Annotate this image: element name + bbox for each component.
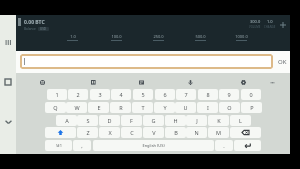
- button[interactable]: Y: [154, 102, 175, 113]
- button[interactable]: English (US): [93, 140, 214, 151]
- staticText: 1000.0: [235, 34, 248, 39]
- button[interactable]: T: [132, 102, 153, 113]
- staticText: E: [97, 104, 101, 111]
- staticText: M: [216, 129, 221, 136]
- staticText: 6: [163, 91, 167, 98]
- button[interactable]: K: [208, 115, 229, 126]
- button[interactable]: M: [208, 127, 229, 138]
- staticText: 1.0: [70, 34, 76, 39]
- button[interactable]: I: [197, 102, 218, 113]
- staticText: 1.0: [267, 19, 273, 24]
- staticText: K: [217, 117, 221, 124]
- staticText: H: [173, 117, 178, 124]
- button[interactable]: GIF: [136, 77, 146, 87]
- button[interactable]: P: [241, 102, 262, 113]
- staticText: .: [223, 142, 225, 149]
- button[interactable]: S: [77, 115, 98, 126]
- button[interactable]: L: [230, 115, 251, 126]
- button[interactable]: 1.0: [63, 34, 81, 45]
- staticText: 4: [119, 91, 123, 98]
- button[interactable]: Stickers: [88, 77, 98, 87]
- staticText: Balance: [24, 27, 36, 31]
- button[interactable]: Z: [77, 127, 98, 138]
- staticText: W: [74, 104, 80, 111]
- staticText: 7: [184, 91, 188, 98]
- button[interactable]: Q: [45, 102, 66, 113]
- button[interactable]: 0: [241, 89, 261, 100]
- button[interactable]: U: [175, 102, 196, 113]
- button[interactable]: W: [66, 102, 87, 113]
- button[interactable]: 2: [68, 89, 88, 100]
- staticText: P: [250, 104, 254, 111]
- button[interactable]: More options: [267, 77, 277, 87]
- button[interactable]: J: [186, 115, 207, 126]
- button[interactable]: Recent apps: [0, 35, 16, 49]
- button[interactable]: Enter: [234, 140, 261, 151]
- button[interactable]: 4: [111, 89, 131, 100]
- staticText: USD: [40, 27, 47, 31]
- button[interactable]: V: [143, 127, 164, 138]
- staticText: V: [152, 129, 156, 136]
- staticText: I: [207, 104, 209, 111]
- staticText: VOLUME: [249, 25, 261, 29]
- staticText: O: [227, 104, 232, 111]
- button[interactable]: E: [88, 102, 109, 113]
- button[interactable]: F: [121, 115, 142, 126]
- button[interactable]: Voice input: [185, 77, 195, 87]
- button[interactable]: 100.0: [107, 34, 125, 45]
- staticText: Z: [86, 129, 90, 136]
- button[interactable]: OK: [274, 54, 290, 69]
- button[interactable]: C: [121, 127, 142, 138]
- button[interactable]: G: [143, 115, 164, 126]
- button[interactable]: 6: [155, 89, 175, 100]
- button[interactable]: !#1: [45, 140, 72, 151]
- button[interactable]: Shift: [45, 127, 76, 138]
- button[interactable]: ,: [73, 140, 91, 151]
- button[interactable]: 8: [198, 89, 218, 100]
- staticText: B: [174, 129, 178, 136]
- button[interactable]: N: [186, 127, 207, 138]
- button[interactable]: 1: [47, 89, 67, 100]
- button[interactable]: Home: [0, 75, 16, 89]
- staticText: 0.00 BTC: [24, 19, 45, 26]
- staticText: R: [119, 104, 123, 111]
- staticText: 8: [206, 91, 210, 98]
- staticText: X: [108, 129, 112, 136]
- button[interactable]: Emoji: [37, 77, 47, 87]
- staticText: 500.0: [195, 34, 206, 39]
- button[interactable]: Backspace: [230, 127, 261, 138]
- button[interactable]: R: [110, 102, 131, 113]
- staticText: 100.0: [111, 34, 122, 39]
- button[interactable]: 9: [219, 89, 239, 100]
- button[interactable]: B: [165, 127, 186, 138]
- button[interactable]: .: [215, 140, 233, 151]
- button[interactable]: Add: [278, 20, 288, 30]
- button[interactable]: D: [99, 115, 120, 126]
- staticText: L: [239, 117, 242, 124]
- button[interactable]: 5: [133, 89, 153, 100]
- staticText: ,: [81, 142, 83, 149]
- button[interactable]: 1000.0: [232, 34, 250, 45]
- button[interactable]: O: [219, 102, 240, 113]
- staticText: S: [86, 117, 90, 124]
- staticText: Q: [53, 104, 58, 111]
- button[interactable]: H: [165, 115, 186, 126]
- button[interactable]: 7: [176, 89, 196, 100]
- staticText: N: [194, 129, 199, 136]
- button[interactable]: Back: [0, 115, 16, 129]
- button[interactable]: X: [99, 127, 120, 138]
- staticText: English (US): [142, 143, 165, 148]
- button[interactable]: 250.0: [149, 34, 167, 45]
- button[interactable]: 3: [90, 89, 110, 100]
- staticText: G: [151, 117, 156, 124]
- staticText: 0: [249, 91, 253, 98]
- staticText: T: [141, 104, 145, 111]
- button[interactable]: [20, 54, 273, 69]
- staticText: 300.0: [250, 19, 261, 24]
- button[interactable]: A: [56, 115, 77, 126]
- button[interactable]: Keyboard settings: [238, 77, 248, 87]
- staticText: 1: [55, 91, 59, 98]
- staticText: 5: [141, 91, 145, 98]
- staticText: C: [130, 129, 134, 136]
- button[interactable]: 500.0: [191, 34, 209, 45]
